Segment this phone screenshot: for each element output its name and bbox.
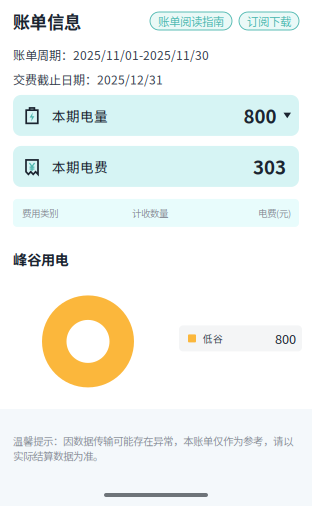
- staticText: 低谷: [203, 331, 223, 345]
- staticText: 303: [253, 153, 286, 180]
- staticText: 本期电费: [52, 157, 108, 176]
- staticText: 800: [275, 329, 296, 348]
- staticText: 计收数量: [132, 206, 168, 220]
- staticText: 电费(元): [258, 206, 291, 220]
- staticText: 账单周期：2025/11/01-2025/11/30: [13, 46, 209, 63]
- staticText: 温馨提示：因数据传输可能存在异常，本账单仅作为参考，请以实际结算数据为准。: [13, 433, 293, 463]
- button[interactable]: 本期电费: [13, 146, 299, 187]
- staticText: 订阅下载: [247, 13, 291, 29]
- staticText: 费用类别: [22, 206, 58, 220]
- staticText: 本期电量: [52, 106, 108, 125]
- staticText: 800: [243, 102, 276, 129]
- staticText: 峰谷用电: [13, 249, 69, 269]
- staticText: 账单阅读指南: [158, 13, 224, 29]
- button[interactable]: 本期电量: [13, 95, 299, 136]
- button[interactable]: 订阅下载: [239, 12, 299, 30]
- staticText: 账单信息: [13, 8, 81, 34]
- button[interactable]: 账单阅读指南: [150, 12, 232, 30]
- staticText: 交费截止日期：2025/12/31: [13, 70, 163, 88]
